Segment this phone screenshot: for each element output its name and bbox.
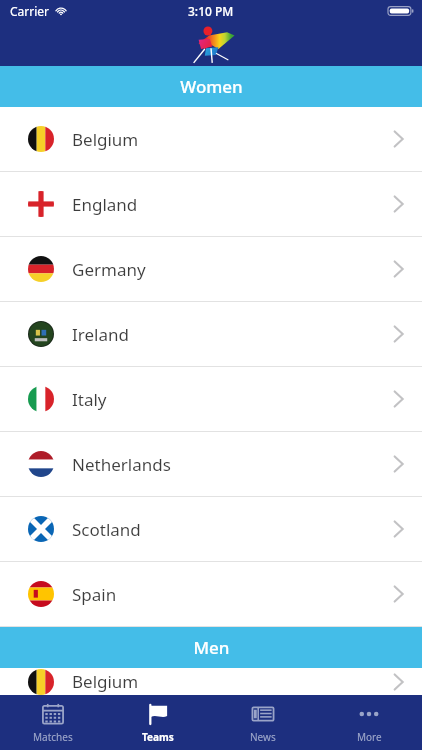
staticText: Teams [142, 730, 174, 744]
staticText: 3:10 PM [188, 3, 234, 19]
button[interactable]: More [316, 695, 422, 750]
button[interactable]: Scotland [0, 497, 422, 562]
staticText: Belgium [72, 128, 139, 151]
staticText: Women [180, 75, 243, 98]
staticText: Carrier [10, 3, 50, 19]
staticText: Netherlands [72, 453, 171, 476]
button[interactable]: England [0, 172, 422, 237]
staticText: Belgium [72, 670, 139, 693]
staticText: Matches [33, 730, 73, 744]
staticText: Scotland [72, 518, 141, 541]
staticText: Germany [72, 258, 146, 281]
staticText: News [250, 730, 276, 744]
button[interactable]: Belgium [0, 107, 422, 172]
button[interactable]: Netherlands [0, 432, 422, 497]
button[interactable]: Ireland [0, 302, 422, 367]
button[interactable]: Germany [0, 237, 422, 302]
button[interactable]: Matches [0, 695, 105, 750]
button[interactable]: Belgium [0, 668, 422, 695]
button[interactable]: Teams [105, 695, 210, 750]
staticText: Spain [72, 583, 117, 606]
staticText: Men [193, 636, 230, 659]
button[interactable]: Spain [0, 562, 422, 627]
staticText: England [72, 193, 138, 216]
staticText: Italy [72, 388, 107, 411]
staticText: Ireland [72, 323, 129, 346]
staticText: More [357, 730, 382, 744]
button[interactable]: News [210, 695, 316, 750]
button[interactable]: Italy [0, 367, 422, 432]
